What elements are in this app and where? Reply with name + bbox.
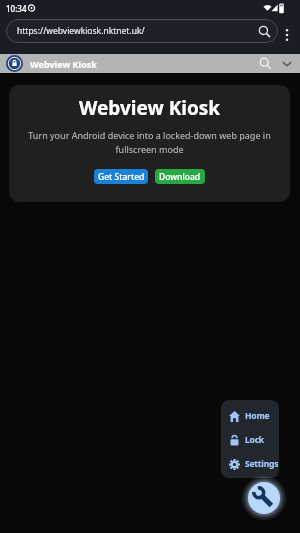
staticText: Webview Kiosk bbox=[30, 58, 97, 70]
staticText: Webview Kiosk bbox=[79, 95, 221, 121]
button[interactable] bbox=[282, 27, 292, 43]
button[interactable] bbox=[6, 55, 23, 72]
button[interactable]: Home bbox=[221, 404, 279, 428]
button[interactable]: Settings bbox=[221, 452, 279, 476]
button[interactable]: Download bbox=[155, 169, 205, 184]
staticText: Settings bbox=[245, 458, 279, 470]
button[interactable]: Get Started bbox=[94, 169, 148, 184]
button[interactable]: Lock bbox=[221, 428, 279, 452]
staticText: Home bbox=[245, 410, 270, 422]
staticText: Download bbox=[159, 171, 201, 183]
button[interactable] bbox=[258, 25, 271, 38]
button[interactable] bbox=[259, 57, 272, 70]
button[interactable] bbox=[282, 59, 292, 69]
staticText: Lock bbox=[245, 434, 264, 446]
staticText: 10:34 bbox=[6, 3, 27, 14]
button[interactable]: https://webviewkiosk.nktnet.uk/ bbox=[6, 19, 278, 43]
staticText: Get Started bbox=[98, 171, 145, 183]
button[interactable] bbox=[248, 482, 280, 514]
staticText: https://webviewkiosk.nktnet.uk/ bbox=[17, 25, 145, 37]
staticText: Turn your Android device into a locked-d… bbox=[28, 129, 271, 156]
